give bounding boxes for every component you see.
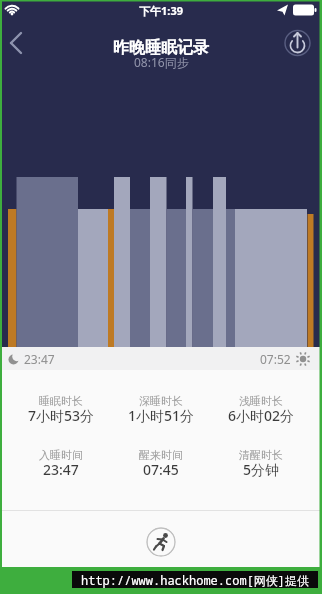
button[interactable] xyxy=(0,27,40,67)
staticText: 08:16同步 xyxy=(134,54,189,70)
staticText: 醒来时间 xyxy=(139,448,183,462)
staticText: 1小时51分 xyxy=(128,406,195,425)
button[interactable] xyxy=(146,527,176,557)
staticText: 23:47 xyxy=(43,460,79,479)
staticText: 5分钟 xyxy=(243,460,280,479)
button[interactable] xyxy=(277,22,319,64)
staticText: 昨晚睡眠记录 xyxy=(113,38,209,58)
staticText: 23:47 xyxy=(24,351,55,367)
staticText: 下午1:39 xyxy=(139,3,183,18)
staticText: 07:52 xyxy=(260,351,291,367)
staticText: 7小时53分 xyxy=(28,406,95,425)
staticText: 深睡时长 xyxy=(139,394,183,408)
staticText: 清醒时长 xyxy=(239,448,283,462)
staticText: 入睡时间 xyxy=(39,448,83,462)
staticText: 浅睡时长 xyxy=(239,394,283,408)
staticText: 07:45 xyxy=(143,460,179,479)
staticText: 睡眠时长 xyxy=(39,394,83,408)
staticText: http://www.hackhome.com[网侠]提供 xyxy=(81,572,310,588)
staticText: 6小时02分 xyxy=(228,406,295,425)
